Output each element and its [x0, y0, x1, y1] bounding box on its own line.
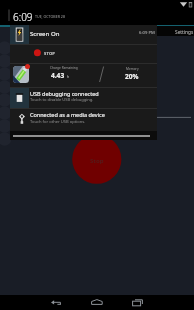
- button[interactable]: Back: [45, 295, 67, 310]
- button[interactable]: Charge Remaining: [10, 64, 157, 86]
- staticText: 4.43: [51, 71, 65, 80]
- staticText: Charge Remaining: [50, 66, 78, 70]
- button[interactable]: Connected as a media device: [10, 109, 157, 131]
- button[interactable]: STOP: [10, 45, 157, 63]
- staticText: Touch for other USB options.: [30, 119, 86, 125]
- button[interactable]: USB debugging connected: [10, 88, 157, 109]
- staticText: TUE, OCTOBER 28: [35, 14, 65, 19]
- staticText: Screen On: [30, 29, 60, 37]
- staticText: 20%: [125, 72, 139, 81]
- staticText: h: [67, 75, 69, 79]
- staticText: STOP: [44, 51, 56, 57]
- staticText: USB debugging connected: [30, 90, 99, 97]
- staticText: 6:09: [13, 10, 33, 24]
- button[interactable]: Screen On: [10, 25, 157, 44]
- staticText: Connected as a media device: [30, 111, 105, 118]
- staticText: Settings: [175, 29, 194, 36]
- staticText: Stop: [90, 157, 104, 165]
- button[interactable]: Recent apps: [127, 295, 149, 310]
- staticText: 6:09 PM: [139, 30, 155, 36]
- staticText: Memory: [126, 67, 139, 71]
- button[interactable]: Home: [86, 295, 108, 310]
- button[interactable]: Stop: [72, 140, 121, 185]
- button[interactable]: Settings: [157, 26, 194, 36]
- staticText: Touch to disable USB debugging.: [30, 97, 94, 103]
